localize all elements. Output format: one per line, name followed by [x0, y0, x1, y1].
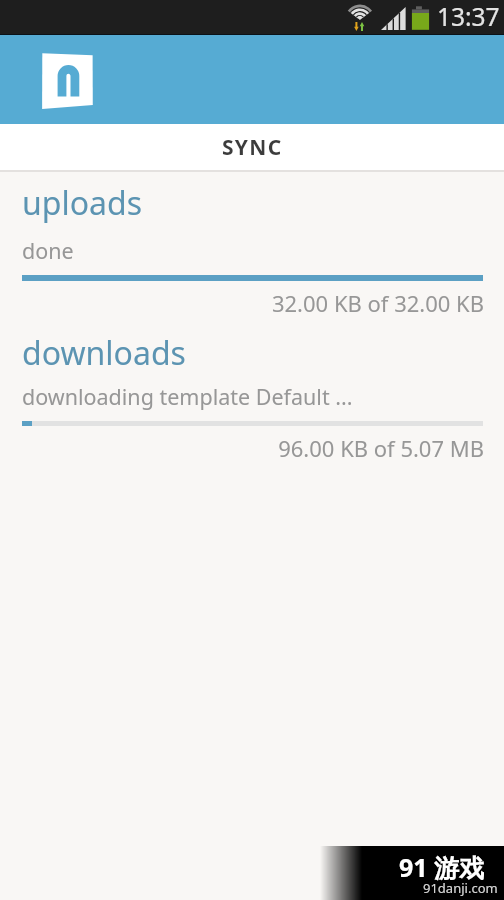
other: Cellular signal: [380, 6, 406, 30]
staticText: 13:37: [437, 0, 500, 33]
button[interactable]: downloads: [0, 331, 504, 463]
staticText: uploads: [22, 181, 143, 225]
button[interactable]: App logo: [40, 51, 96, 111]
staticText: done: [22, 236, 74, 265]
staticText: 91 游戏: [399, 850, 485, 884]
staticText: 32.00 KB of 32.00 KB: [0, 288, 484, 318]
staticText: SYNC: [222, 133, 283, 162]
staticText: 91danji.com: [423, 879, 498, 897]
other: Wi-Fi connected: [346, 4, 374, 31]
staticText: 96.00 KB of 5.07 MB: [0, 433, 484, 463]
staticText: downloads: [22, 331, 186, 375]
button[interactable]: SYNC: [0, 124, 504, 170]
other: Battery: [411, 6, 430, 30]
button[interactable]: uploads: [0, 181, 504, 318]
staticText: downloading template Default ...: [22, 382, 353, 411]
